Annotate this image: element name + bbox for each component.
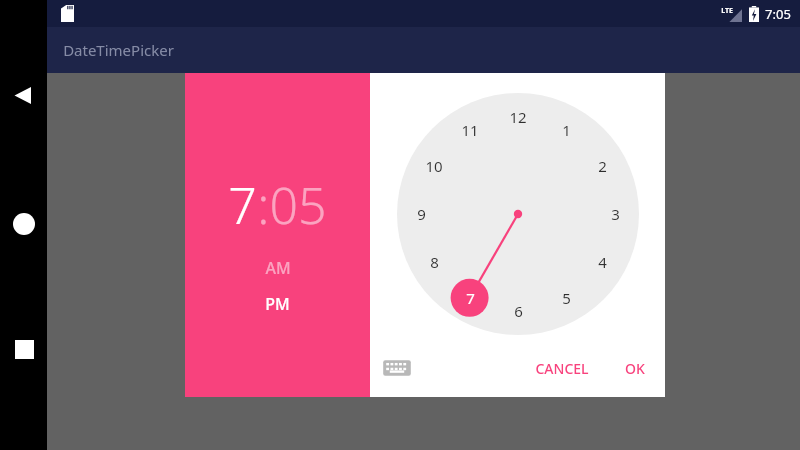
staticText: LTE	[721, 6, 733, 16]
button[interactable]: 7	[228, 171, 257, 239]
button[interactable]: 1	[551, 119, 581, 141]
staticText: 7	[228, 171, 257, 239]
button[interactable]: 4	[587, 251, 617, 273]
button[interactable]: 6	[503, 300, 533, 322]
button[interactable]: OK	[617, 351, 653, 386]
staticText: 10	[425, 156, 443, 176]
staticText: 1	[562, 120, 571, 140]
button[interactable]: 2	[587, 155, 617, 177]
button[interactable]: 5	[551, 287, 581, 309]
staticText: 9	[417, 204, 426, 224]
staticText: 11	[461, 120, 479, 140]
button[interactable]: Switch to text input	[382, 356, 412, 380]
button[interactable]: Back	[11, 83, 36, 108]
staticText: 6	[514, 301, 523, 321]
button[interactable]: 8	[419, 251, 449, 273]
button[interactable]: 3	[600, 203, 630, 225]
staticText: DateTimePicker	[63, 40, 174, 60]
button[interactable]: AM	[255, 255, 301, 281]
button[interactable]: Home	[13, 213, 35, 235]
staticText: PM	[265, 293, 290, 315]
staticText: 4	[598, 252, 607, 272]
button[interactable]: 12	[503, 106, 533, 128]
button[interactable]: 7	[455, 287, 485, 309]
staticText: 12	[509, 107, 527, 127]
button[interactable]: 9	[406, 203, 436, 225]
staticText: OK	[625, 359, 645, 378]
button[interactable]: 10	[419, 155, 449, 177]
button[interactable]: PM	[255, 291, 300, 317]
staticText: 7:05	[765, 5, 791, 23]
button[interactable]: CANCEL	[527, 351, 597, 386]
staticText: AM	[265, 257, 291, 279]
staticText: :05	[257, 171, 327, 239]
staticText: CANCEL	[535, 359, 589, 378]
staticText: 7	[466, 288, 475, 308]
staticText: 8	[430, 252, 439, 272]
button[interactable]: 11	[455, 119, 485, 141]
button[interactable]: :05	[257, 171, 327, 239]
staticText: 3	[611, 204, 620, 224]
staticText: 5	[562, 288, 571, 308]
staticText: 2	[598, 156, 607, 176]
